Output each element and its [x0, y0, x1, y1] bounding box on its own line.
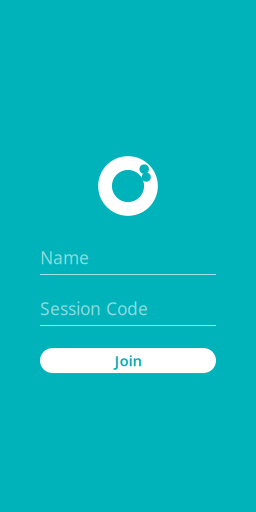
staticText: Name	[40, 246, 89, 269]
staticText: Session Code	[40, 297, 148, 320]
button[interactable]: Join	[40, 348, 216, 373]
staticText: Join	[114, 351, 141, 370]
